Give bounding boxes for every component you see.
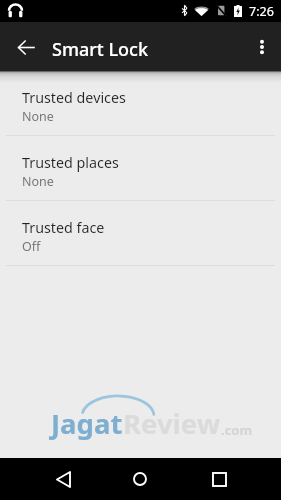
staticText: Smart Lock (52, 37, 148, 62)
staticText: Review (123, 405, 221, 442)
button[interactable]: Back (5, 26, 47, 68)
button[interactable]: Back (40, 458, 86, 500)
staticText: None (22, 108, 54, 125)
staticText: None (22, 173, 54, 190)
staticText: Trusted devices (22, 88, 126, 107)
button[interactable]: Recents (196, 458, 242, 500)
staticText: .com (221, 421, 253, 439)
staticText: Trusted face (22, 218, 105, 237)
button[interactable]: Home (117, 458, 163, 500)
staticText: Off (22, 238, 41, 255)
button[interactable]: More options (242, 27, 281, 67)
staticText: 7:26 (249, 3, 274, 20)
button[interactable]: Trusted face (0, 201, 281, 265)
staticText: Jagat (51, 405, 123, 442)
button[interactable]: Trusted places (0, 136, 281, 200)
staticText: Trusted places (22, 153, 119, 172)
button[interactable]: Trusted devices (0, 71, 281, 135)
